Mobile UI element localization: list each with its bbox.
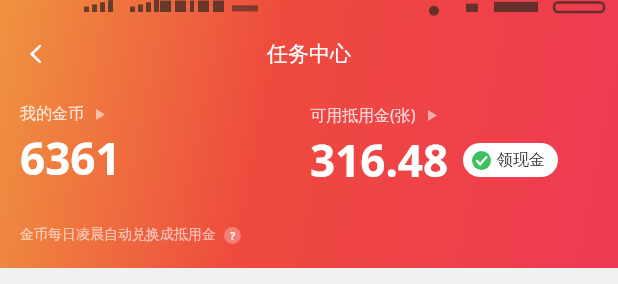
staticText: 领现金: [497, 150, 545, 170]
other: Help: [224, 227, 241, 244]
button[interactable]: 我的金币: [0, 104, 310, 188]
staticText: 可用抵用金(张): [310, 104, 416, 126]
staticText: 金币每日凌晨自动兑换成抵用金: [20, 226, 216, 244]
staticText: 6361: [20, 128, 121, 188]
button[interactable]: Back: [14, 32, 58, 76]
staticText: 我的金币: [20, 104, 84, 124]
button[interactable]: 领现金: [463, 143, 558, 177]
staticText: 316.48: [310, 130, 449, 190]
staticText: ?: [230, 228, 236, 243]
staticText: 任务中心: [267, 41, 351, 67]
button[interactable]: 可用抵用金(张): [310, 104, 437, 126]
button[interactable]: 金币每日凌晨自动兑换成抵用金: [20, 226, 241, 244]
